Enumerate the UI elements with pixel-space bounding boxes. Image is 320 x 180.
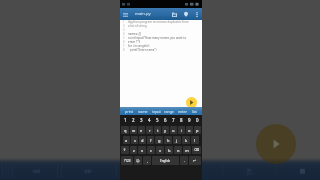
button[interactable]: Run code	[186, 97, 197, 108]
button[interactable]: 9	[185, 115, 193, 125]
button[interactable]: 8	[177, 115, 185, 125]
staticText: ↵	[193, 159, 197, 163]
button[interactable]: Save	[169, 9, 179, 19]
staticText: list	[192, 109, 197, 114]
staticText: o	[188, 128, 191, 133]
button[interactable]: j	[173, 136, 181, 144]
button[interactable]: ,	[143, 156, 151, 165]
button[interactable]: u	[170, 126, 177, 134]
button[interactable]: ☺	[134, 156, 142, 165]
button[interactable]: ?123	[121, 156, 133, 165]
button[interactable]: 2	[129, 115, 137, 125]
button[interactable]: e	[138, 126, 145, 134]
staticText: w	[132, 128, 136, 133]
staticText: input	[152, 109, 161, 114]
staticText: c	[150, 148, 152, 153]
button[interactable]: ↵	[189, 156, 201, 165]
staticText: j	[176, 138, 178, 143]
staticText: ?123	[124, 159, 131, 163]
staticText: 1	[123, 20, 125, 24]
button[interactable]: print	[125, 109, 134, 114]
button[interactable]: ⇧	[121, 146, 129, 154]
staticText: enter ?"))	[128, 40, 141, 44]
button[interactable]: 7	[169, 115, 177, 125]
button[interactable]: s	[131, 136, 138, 144]
button[interactable]: a	[123, 136, 130, 144]
button[interactable]: b	[165, 146, 173, 154]
button[interactable]: name	[138, 109, 148, 114]
staticText: 8	[123, 48, 125, 52]
staticText: y	[164, 128, 167, 133]
button[interactable]: 0	[193, 115, 201, 125]
staticText: 3	[123, 28, 125, 32]
staticText: l	[194, 138, 196, 143]
staticText: r	[149, 128, 151, 133]
staticText: 6	[123, 40, 125, 44]
staticText: m	[185, 148, 189, 153]
button[interactable]: y	[162, 126, 169, 134]
staticText: ⇧	[123, 148, 127, 152]
button[interactable]: x	[138, 146, 146, 154]
button[interactable]: r	[146, 126, 153, 134]
button[interactable]: input	[152, 109, 161, 114]
button[interactable]: English	[152, 156, 179, 165]
staticText: n	[177, 148, 180, 153]
staticText: ,	[147, 158, 148, 163]
button[interactable]: g	[155, 136, 163, 144]
button[interactable]: z	[130, 146, 137, 154]
button[interactable]: l	[191, 136, 199, 144]
staticText: 4	[148, 117, 151, 123]
button[interactable]: 6	[161, 115, 169, 125]
button[interactable]: c	[147, 146, 155, 154]
button[interactable]: q	[121, 126, 129, 134]
staticText: a list of string	[128, 24, 147, 28]
button[interactable]: enter	[178, 109, 188, 114]
button[interactable]: 4	[145, 115, 153, 125]
staticText: print("Enter name")	[130, 48, 157, 52]
staticText: 2	[123, 24, 125, 28]
staticText: v	[159, 148, 162, 153]
button[interactable]: w	[130, 126, 137, 134]
button[interactable]: i	[178, 126, 185, 134]
staticText: x	[141, 148, 144, 153]
button[interactable]: n	[174, 146, 182, 154]
button[interactable]: m	[183, 146, 191, 154]
button[interactable]: Play	[256, 124, 296, 164]
button[interactable]: range	[164, 109, 174, 114]
staticText: b	[168, 148, 171, 153]
staticText: name	[138, 109, 148, 114]
button[interactable]: Menu	[121, 10, 130, 19]
button[interactable]: d	[139, 136, 146, 144]
staticText: 3	[140, 117, 143, 123]
button[interactable]: p	[194, 126, 201, 134]
staticText: enter	[178, 109, 188, 114]
button[interactable]: ⌫	[192, 146, 201, 154]
button[interactable]: h	[164, 136, 172, 144]
staticText: 4	[123, 32, 125, 36]
staticText: range	[164, 109, 174, 114]
staticText: t	[157, 128, 159, 133]
staticText: n=int(input("How many names you want to	[128, 36, 187, 40]
staticText: a	[125, 138, 128, 143]
button[interactable]: 1	[121, 115, 129, 125]
button[interactable]: t	[154, 126, 161, 134]
button[interactable]: More options	[192, 10, 201, 19]
staticText: u	[172, 128, 175, 133]
staticText: 0	[196, 117, 199, 123]
staticText: print	[125, 109, 134, 114]
staticText: k	[185, 138, 188, 143]
staticText: q	[124, 128, 127, 133]
button[interactable]: 3	[137, 115, 145, 125]
button[interactable]: f	[147, 136, 154, 144]
button[interactable]: 5	[153, 115, 161, 125]
staticText: 6	[164, 117, 167, 123]
staticText: 7	[123, 44, 125, 48]
button[interactable]: .	[180, 156, 188, 165]
staticText: i	[181, 128, 183, 133]
button[interactable]: Run	[181, 9, 191, 19]
staticText: #python program to remove duplicates fro…	[128, 20, 189, 24]
button[interactable]: o	[186, 126, 193, 134]
button[interactable]: k	[182, 136, 190, 144]
button[interactable]: list	[192, 109, 197, 114]
button[interactable]: v	[156, 146, 164, 154]
